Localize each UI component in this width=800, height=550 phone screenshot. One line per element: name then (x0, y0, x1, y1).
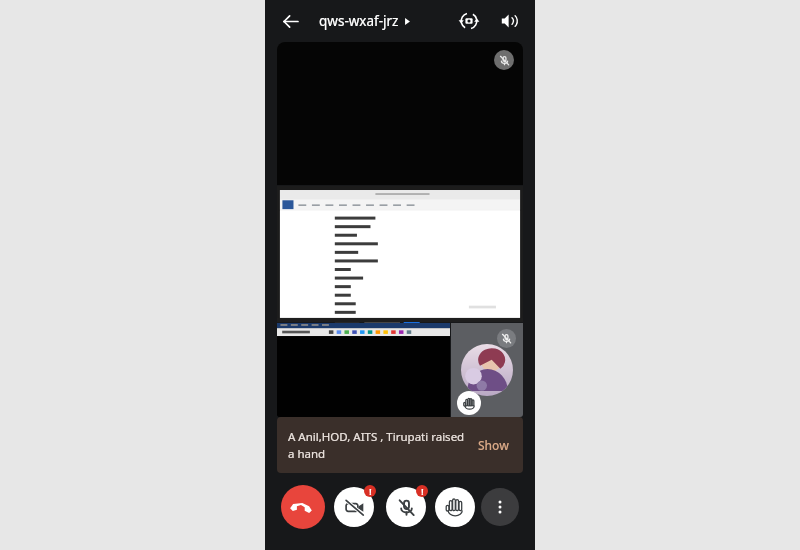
staticText: Show (478, 437, 509, 453)
button[interactable]: Show (474, 434, 513, 456)
button[interactable]: Switch camera (451, 3, 487, 39)
button[interactable]: Unmute microphone (383, 484, 429, 530)
button[interactable]: Speaker (491, 3, 527, 39)
button[interactable]: Raise hand (435, 487, 475, 527)
button[interactable]: A Anil,HOD, AITS , Tirupati raised a han… (277, 417, 523, 473)
button[interactable] (451, 323, 523, 417)
button[interactable]: More options (481, 488, 519, 526)
staticText: A Anil,HOD, AITS , Tirupati raised a han… (288, 429, 466, 461)
staticText: ! (421, 486, 424, 497)
staticText: qws-wxaf-jrz (319, 12, 399, 30)
button[interactable] (277, 186, 523, 322)
button[interactable] (277, 42, 523, 185)
button[interactable]: Back (273, 4, 307, 38)
staticText: ! (369, 486, 372, 497)
button[interactable]: End call (281, 485, 325, 529)
button[interactable] (277, 323, 450, 417)
button[interactable]: qws-wxaf-jrz (317, 10, 413, 32)
button[interactable]: Turn on camera (331, 484, 377, 530)
